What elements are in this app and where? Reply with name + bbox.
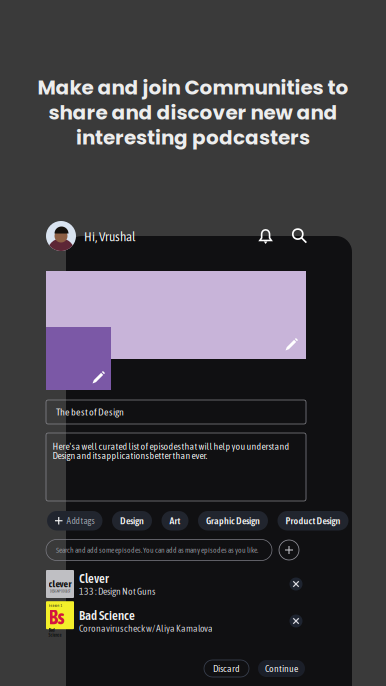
staticText: Art: [169, 515, 180, 526]
button[interactable]: Product Design: [277, 511, 348, 530]
button[interactable]: Art: [161, 511, 188, 530]
staticText: Design and its applications better than …: [52, 450, 207, 461]
staticText: DESIGN PODCAST: [50, 589, 70, 593]
staticText: Discard: [213, 663, 240, 674]
staticText: interesting podcasters: [76, 123, 310, 151]
button[interactable]: Search and add some episodes. You can ad…: [46, 539, 272, 560]
button[interactable]: Discard: [204, 660, 249, 677]
staticText: Design: [120, 515, 144, 526]
staticText: 133 : Design Not Guns: [79, 586, 155, 597]
button[interactable]: Remove Clever: [286, 574, 306, 594]
button[interactable]: Here's a well curated list of episodes t…: [46, 433, 306, 501]
staticText: Continue: [265, 663, 298, 674]
button[interactable]: Add tags: [47, 511, 102, 530]
button[interactable]: Notifications: [255, 225, 277, 247]
staticText: Clever: [79, 571, 109, 586]
staticText: Season 1: [48, 603, 62, 607]
button[interactable]: Edit cover image: [46, 271, 306, 359]
staticText: Bad: [48, 627, 54, 633]
staticText: Bad Science: [79, 608, 135, 623]
staticText: Search and add some episodes. You can ad…: [56, 546, 258, 554]
staticText: clever: [48, 578, 71, 589]
staticText: Coronavirus check w/ Aliya Kamalova: [79, 623, 213, 634]
button[interactable]: Edit community image: [46, 327, 111, 390]
staticText: share and discover new and: [48, 98, 337, 126]
button[interactable]: The best of Design: [46, 400, 306, 424]
staticText: Hi, Vrushal: [84, 229, 135, 244]
button[interactable]: Search: [289, 225, 311, 247]
button[interactable]: Continue: [258, 660, 305, 677]
button[interactable]: Graphic Design: [198, 511, 268, 530]
staticText: Graphic Design: [206, 515, 260, 526]
staticText: Here's a well curated list of episodes t…: [52, 441, 289, 452]
staticText: Science: [48, 633, 61, 638]
staticText: Make and join Communities to: [37, 73, 348, 101]
button[interactable]: Design: [112, 511, 152, 530]
button[interactable]: Add episode: [278, 539, 300, 561]
staticText: The best of Design: [56, 406, 124, 418]
staticText: Bs: [48, 605, 64, 628]
staticText: Product Design: [285, 515, 340, 526]
button[interactable]: Remove Bad Science: [286, 611, 306, 631]
staticText: Add tags: [66, 515, 94, 526]
